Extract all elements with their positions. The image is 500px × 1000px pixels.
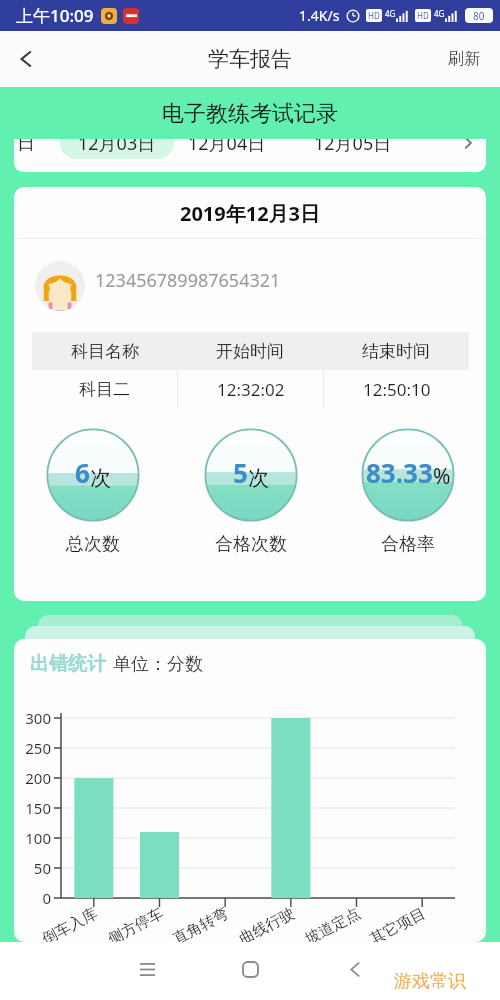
staticText: 4G bbox=[434, 8, 445, 19]
staticText: 5 bbox=[233, 455, 248, 490]
staticText: 12月05日 bbox=[314, 131, 392, 156]
button[interactable]: 日 bbox=[17, 132, 35, 155]
staticText: 日 bbox=[17, 132, 35, 155]
staticText: 1.4K/s bbox=[299, 6, 340, 25]
staticText: 12:32:02 bbox=[217, 378, 285, 401]
button[interactable]: 12月04日 bbox=[188, 131, 266, 156]
staticText: 200 bbox=[14, 768, 51, 788]
staticText: 2019年12月3日 bbox=[14, 200, 486, 227]
staticText: 12:50:10 bbox=[363, 378, 431, 401]
staticText: 合格次数 bbox=[215, 533, 287, 556]
staticText: 侧方停车 bbox=[105, 904, 167, 942]
button[interactable]: Back bbox=[333, 947, 377, 991]
staticText: 50 bbox=[14, 858, 51, 878]
staticText: 250 bbox=[14, 738, 51, 758]
staticText: 曲线行驶 bbox=[236, 904, 298, 942]
staticText: HD bbox=[417, 10, 429, 21]
button[interactable]: Back bbox=[0, 31, 52, 87]
staticText: HD bbox=[368, 10, 380, 21]
staticText: 刷新 bbox=[448, 49, 480, 69]
staticText: 学车报告 bbox=[208, 46, 292, 72]
staticText: 开始时间 bbox=[216, 341, 284, 362]
staticText: 100 bbox=[14, 828, 51, 848]
staticText: 电子教练考试记录 bbox=[162, 100, 338, 128]
staticText: 0 bbox=[14, 888, 51, 908]
staticText: 总次数 bbox=[66, 533, 120, 556]
button[interactable]: 刷新 bbox=[428, 31, 500, 87]
staticText: 次 bbox=[248, 465, 269, 491]
staticText: 直角转弯 bbox=[170, 904, 232, 942]
staticText: 结束时间 bbox=[362, 341, 430, 362]
button[interactable]: 12月03日 bbox=[60, 127, 174, 159]
staticText: 83.33 bbox=[366, 455, 433, 490]
staticText: 12月04日 bbox=[188, 131, 266, 156]
staticText: 科目名称 bbox=[71, 341, 139, 362]
staticText: 其它项目 bbox=[367, 904, 429, 942]
staticText: 150 bbox=[14, 798, 51, 818]
staticText: 12月03日 bbox=[78, 131, 156, 156]
button[interactable]: Recent apps bbox=[125, 947, 169, 991]
staticText: 4G bbox=[385, 8, 396, 19]
button[interactable]: 12月05日 bbox=[314, 131, 392, 156]
staticText: 6 bbox=[75, 455, 90, 490]
button[interactable]: Home bbox=[228, 947, 272, 991]
staticText: 合格率 bbox=[381, 533, 435, 556]
staticText: 单位：分数 bbox=[113, 653, 203, 676]
staticText: 游戏常识 bbox=[394, 970, 466, 993]
staticText: % bbox=[433, 462, 451, 491]
button[interactable]: Next dates bbox=[456, 131, 480, 155]
staticText: 80 bbox=[473, 9, 485, 23]
staticText: 次 bbox=[90, 465, 111, 491]
staticText: 上午10:09 bbox=[16, 4, 94, 27]
staticText: 123456789987654321 bbox=[95, 268, 281, 293]
staticText: 科目二 bbox=[79, 379, 130, 400]
staticText: 300 bbox=[14, 708, 51, 728]
staticText: 坡道定点 bbox=[302, 904, 364, 942]
staticText: 倒车入库 bbox=[39, 904, 101, 942]
staticText: 出错统计 bbox=[30, 652, 106, 676]
